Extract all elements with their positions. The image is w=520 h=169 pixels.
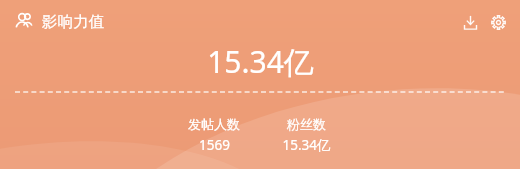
button[interactable]: 粉丝数: [260, 116, 352, 154]
staticText: 发帖人数: [188, 116, 240, 132]
staticText: 15.34亿: [282, 136, 331, 154]
staticText: 粉丝数: [287, 116, 326, 132]
staticText: 1569: [199, 136, 230, 154]
staticText: 影响力值: [42, 12, 104, 32]
button[interactable]: 发帖人数: [168, 116, 260, 154]
button[interactable]: Settings: [486, 10, 510, 34]
button[interactable]: Download: [458, 10, 482, 34]
staticText: 15.34亿: [207, 41, 314, 82]
